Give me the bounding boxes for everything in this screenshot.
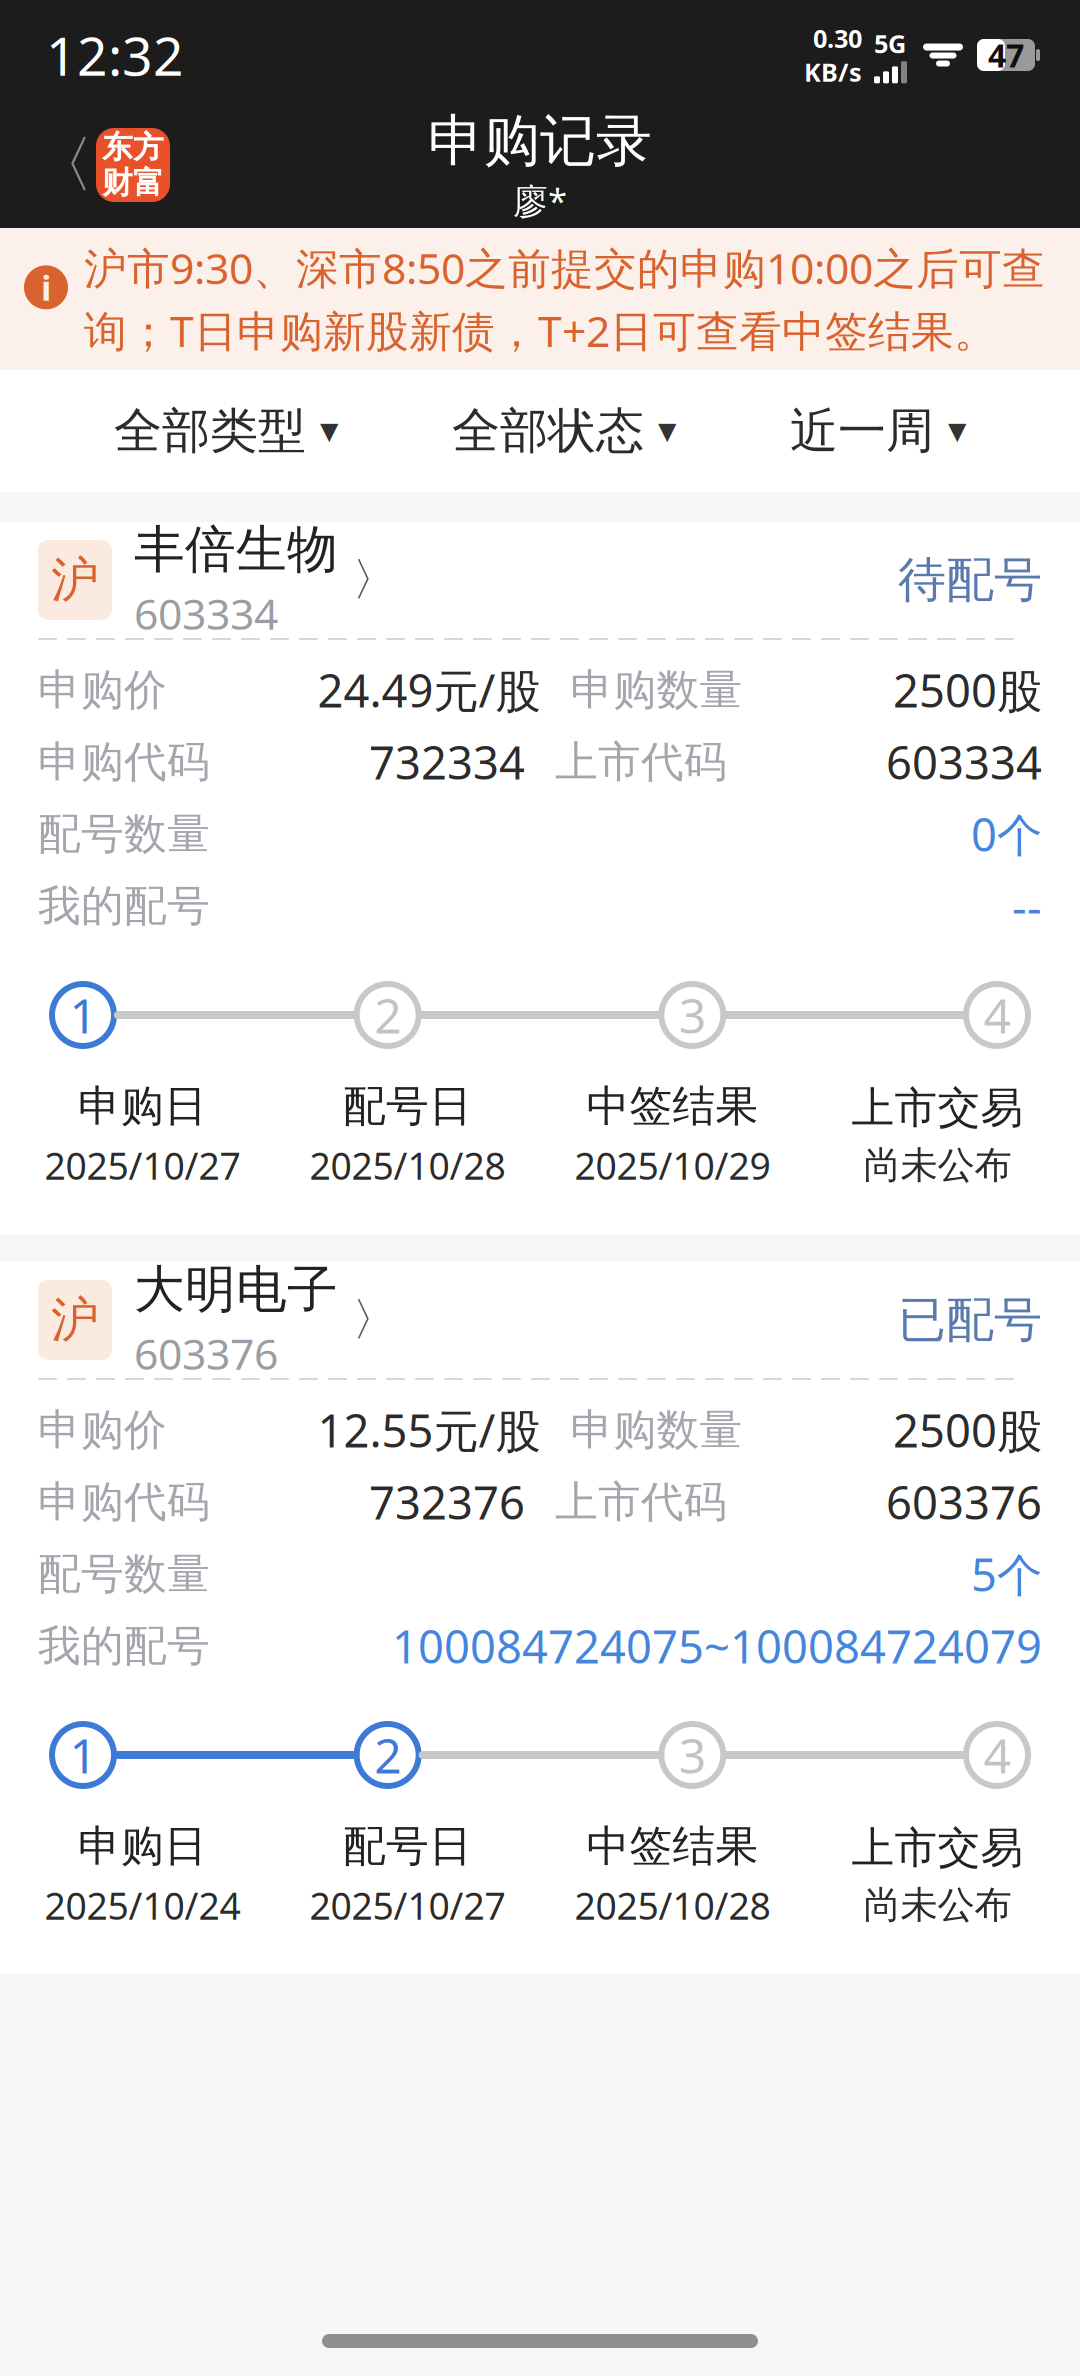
- staticText: 1: [69, 1723, 96, 1787]
- staticText: 我的配号: [38, 880, 210, 932]
- staticText: 4: [983, 983, 1010, 1047]
- staticText: 尚未公布: [863, 1882, 1011, 1928]
- staticText: 待配号: [898, 550, 1042, 609]
- staticText: i: [41, 264, 51, 310]
- staticText: 2025/10/28: [309, 1140, 505, 1190]
- staticText: 询；T日申购新股新债，T+2日可查看中签结果。: [84, 302, 997, 359]
- button[interactable]: 全部状态: [452, 379, 676, 482]
- staticText: 已配号: [898, 1290, 1042, 1349]
- staticText: 全部状态: [452, 401, 644, 460]
- staticText: 上市交易: [851, 1082, 1023, 1134]
- staticText: 2025/10/27: [309, 1880, 505, 1930]
- staticText: 申购价: [38, 664, 167, 716]
- button[interactable]: 全部类型: [114, 379, 338, 482]
- staticText: --: [1012, 876, 1042, 936]
- staticText: 0个: [971, 804, 1042, 864]
- staticText: ▼: [658, 417, 676, 445]
- staticText: 3: [679, 1723, 706, 1787]
- button[interactable]: 沪: [0, 1262, 1080, 1378]
- staticText: 近一周: [790, 401, 934, 460]
- staticText: 2025/10/29: [574, 1140, 770, 1190]
- staticText: 配号数量: [38, 1548, 210, 1600]
- staticText: 24.49元/股: [317, 660, 540, 720]
- staticText: 配号数量: [38, 808, 210, 860]
- staticText: 732376: [369, 1472, 525, 1532]
- staticText: 603376: [134, 1325, 278, 1381]
- staticText: 大明电子: [134, 1258, 338, 1321]
- staticText: 100084724075~100084724079: [392, 1616, 1042, 1676]
- staticText: ▼: [320, 417, 338, 445]
- staticText: 2: [374, 1723, 401, 1787]
- staticText: 12:32: [46, 20, 184, 90]
- staticText: 〈: [32, 127, 93, 203]
- staticText: 申购代码: [38, 1476, 210, 1528]
- staticText: 2500股: [893, 660, 1042, 720]
- staticText: 沪: [51, 550, 99, 609]
- staticText: 东方: [102, 128, 164, 166]
- staticText: 上市代码: [555, 736, 727, 788]
- staticText: 申购数量: [570, 1404, 742, 1456]
- button[interactable]: 近一周: [790, 379, 966, 482]
- staticText: 4: [983, 1723, 1010, 1787]
- staticText: 〉: [352, 1292, 397, 1348]
- staticText: 上市代码: [555, 1476, 727, 1528]
- button[interactable]: 沪: [0, 522, 1080, 638]
- staticText: 12.55元/股: [317, 1400, 540, 1460]
- staticText: 2025/10/24: [44, 1880, 240, 1930]
- staticText: 申购价: [38, 1404, 167, 1456]
- staticText: 财富: [102, 164, 164, 202]
- staticText: 2025/10/27: [44, 1140, 240, 1190]
- staticText: 申购代码: [38, 736, 210, 788]
- staticText: 3: [679, 983, 706, 1047]
- staticText: 我的配号: [38, 1620, 210, 1672]
- staticText: 沪: [51, 1290, 99, 1349]
- staticText: 上市交易: [851, 1822, 1023, 1874]
- staticText: 2500股: [893, 1400, 1042, 1460]
- staticText: 配号日: [343, 1820, 472, 1872]
- button[interactable]: 返回: [30, 122, 96, 208]
- staticText: 申购日: [78, 1820, 207, 1872]
- staticText: 申购日: [78, 1080, 207, 1132]
- staticText: 尚未公布: [863, 1142, 1011, 1188]
- staticText: 603376: [886, 1472, 1042, 1532]
- staticText: 5个: [971, 1544, 1042, 1604]
- staticText: 2025/10/28: [574, 1880, 770, 1930]
- staticText: 47: [988, 34, 1024, 76]
- staticText: 中签结果: [586, 1080, 758, 1132]
- staticText: 廖*: [513, 177, 567, 223]
- staticText: 603334: [886, 732, 1042, 792]
- staticText: 沪市9:30、深市8:50之前提交的申购10:00之后可查: [84, 239, 1045, 296]
- staticText: 732334: [369, 732, 525, 792]
- staticText: 1: [69, 983, 96, 1047]
- staticText: 丰倍生物: [134, 519, 338, 581]
- staticText: 配号日: [343, 1080, 472, 1132]
- staticText: 0.30: [813, 21, 862, 55]
- staticText: 中签结果: [586, 1820, 758, 1872]
- staticText: KB/s: [804, 55, 862, 89]
- staticText: 申购数量: [570, 664, 742, 716]
- staticText: 5G: [874, 27, 906, 60]
- staticText: 603334: [134, 585, 278, 641]
- staticText: 全部类型: [114, 401, 306, 460]
- staticText: 2: [374, 983, 401, 1047]
- button[interactable]: 东方财富: [96, 128, 170, 202]
- staticText: 申购记录: [428, 107, 652, 175]
- staticText: 〉: [352, 552, 397, 608]
- staticText: ▼: [948, 417, 966, 445]
